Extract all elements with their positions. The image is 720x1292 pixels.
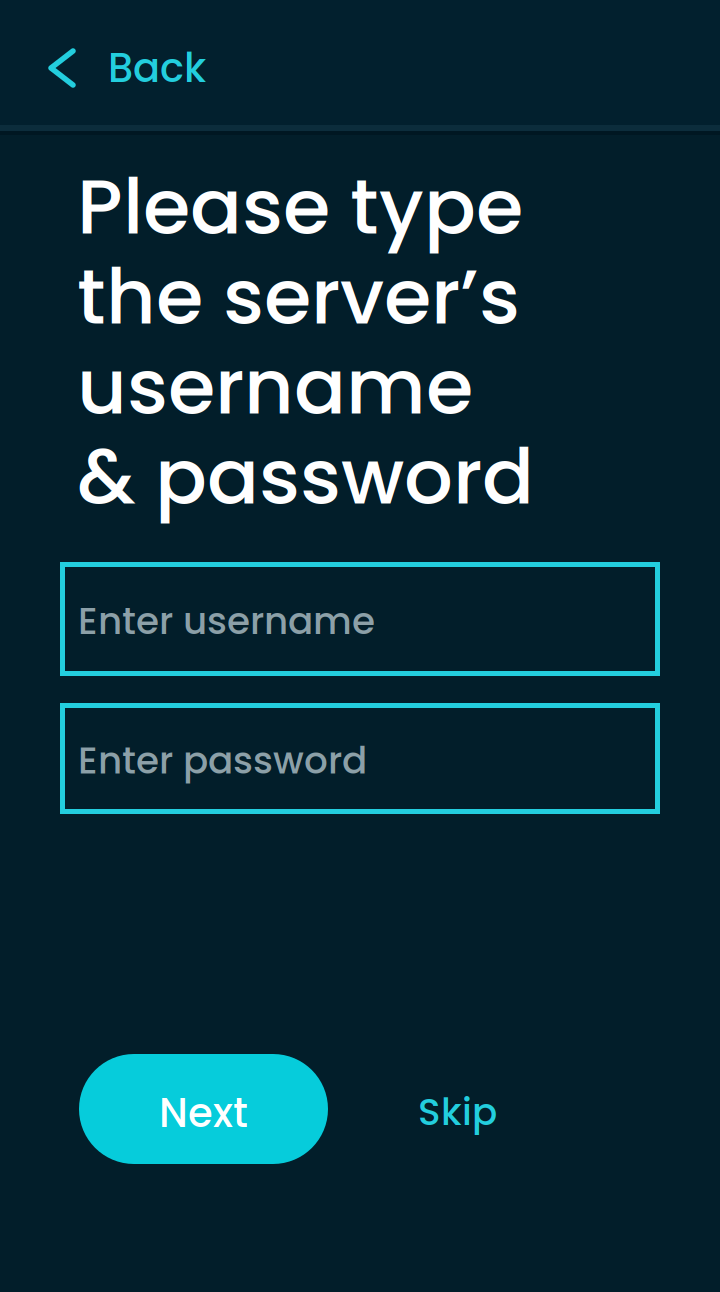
staticText: username [77,333,473,440]
staticText: Please type [77,153,523,260]
button[interactable]: Back [0,13,230,112]
staticText: Back [108,40,206,96]
staticText: Enter username [78,595,375,647]
staticText: the server’s [77,243,520,350]
staticText: Next [159,1085,248,1141]
button[interactable]: Enter password [60,703,660,814]
staticText: Enter password [78,734,367,787]
button[interactable]: Skip [402,1058,513,1160]
button[interactable]: Enter username [60,562,660,676]
staticText: Skip [418,1086,497,1138]
button[interactable]: Next [79,1054,328,1164]
staticText: & password [77,423,534,530]
